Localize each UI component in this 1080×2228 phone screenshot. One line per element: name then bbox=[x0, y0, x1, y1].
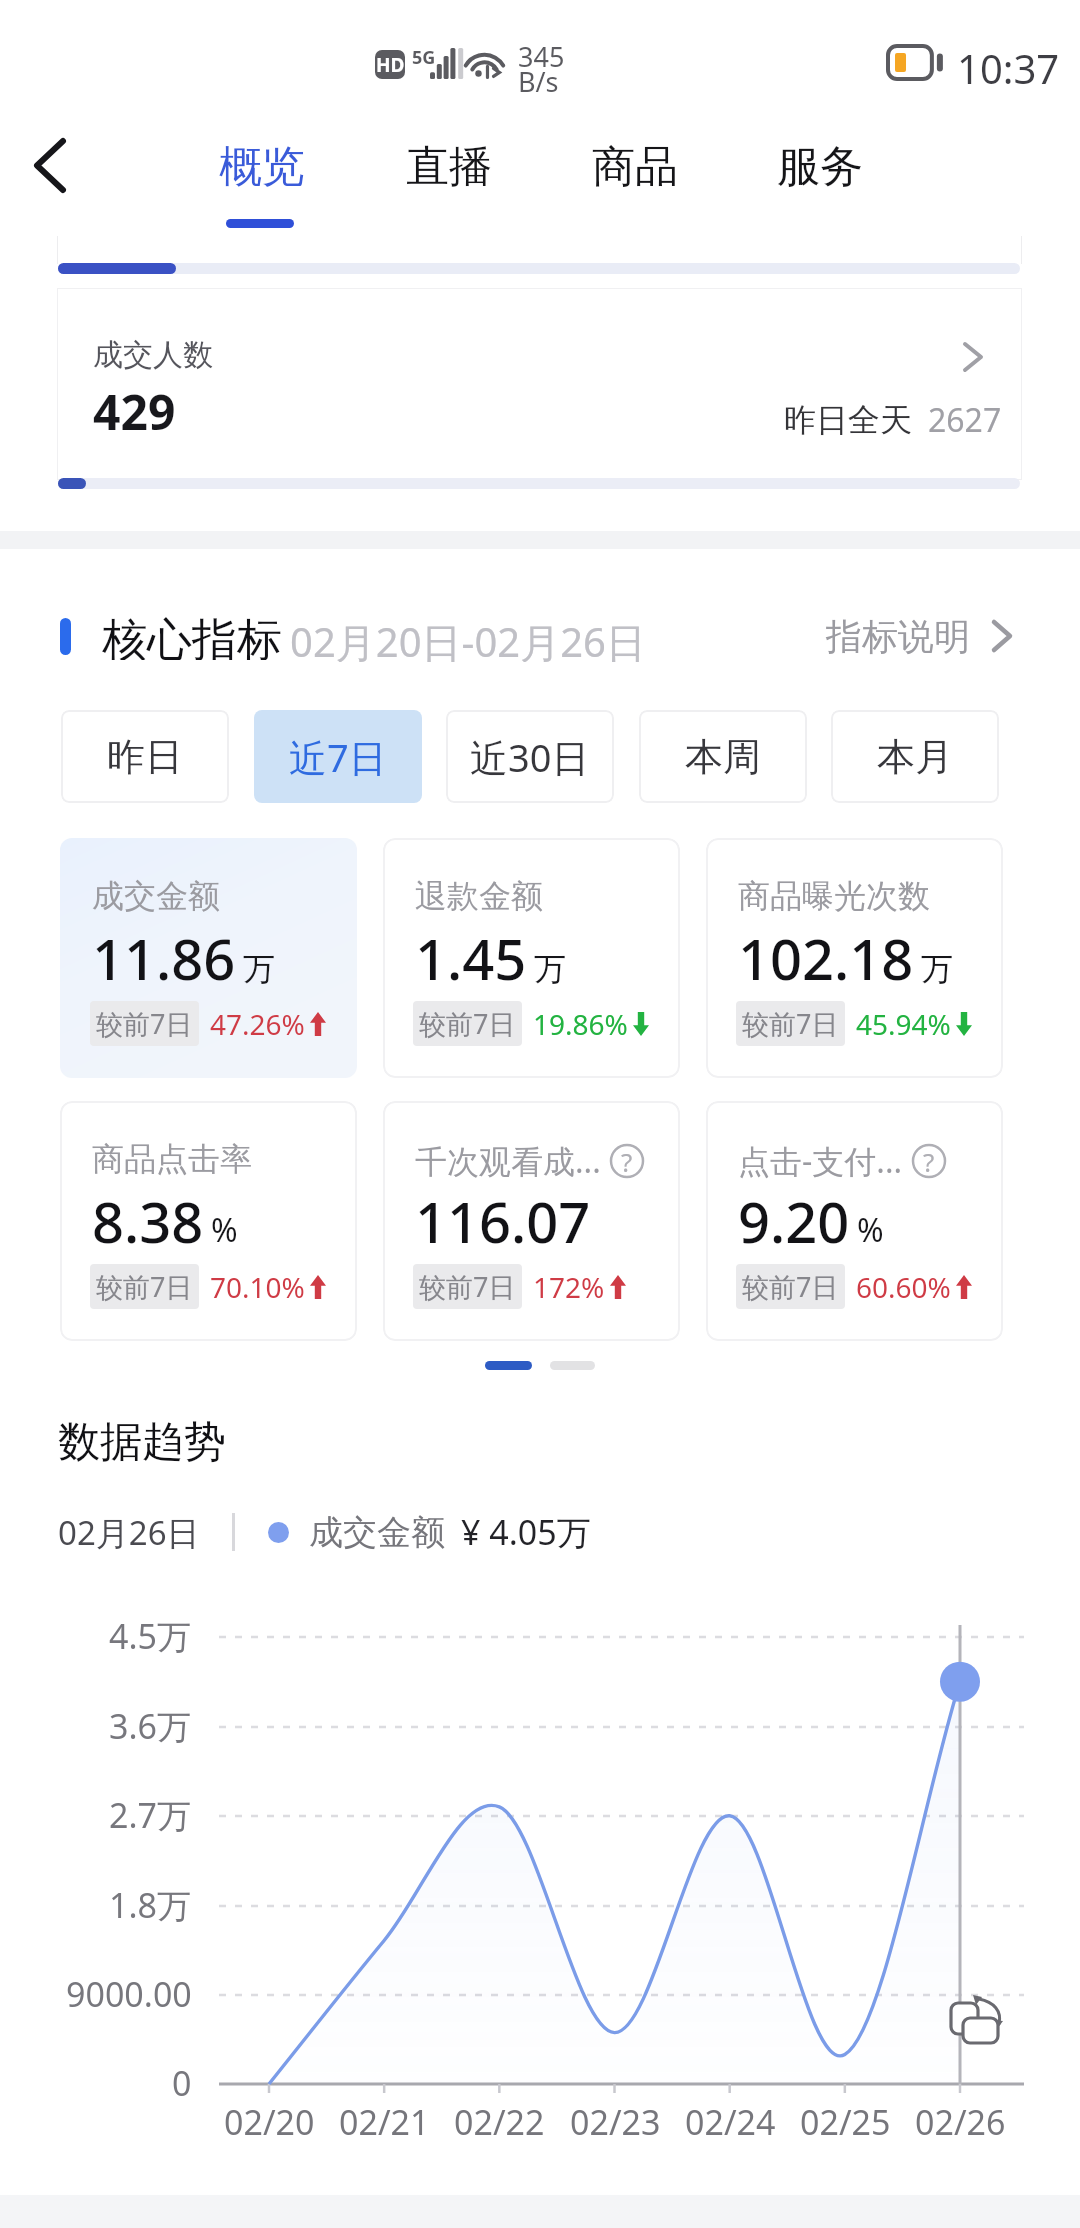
staticText: 19.86% bbox=[533, 1005, 628, 1043]
staticText: 本月 bbox=[877, 733, 953, 781]
button[interactable]: 近7日 bbox=[254, 710, 422, 803]
staticText: 8.38 bbox=[92, 1183, 204, 1259]
staticText: 万 bbox=[243, 949, 275, 989]
button[interactable]: Rotate chart bbox=[946, 1994, 1006, 2054]
button[interactable]: 服务 bbox=[727, 112, 913, 234]
staticText: ¥ 4.05万 bbox=[461, 1509, 591, 1555]
staticText: 退款金额 bbox=[415, 876, 543, 916]
staticText: 45.94% bbox=[856, 1005, 951, 1043]
staticText: 70.10% bbox=[210, 1268, 305, 1306]
staticText: B/s bbox=[518, 63, 559, 100]
staticText: 11.86 bbox=[92, 920, 236, 996]
button[interactable]: 商品 bbox=[542, 112, 728, 234]
staticText: 商品点击率 bbox=[92, 1139, 252, 1179]
staticText: 成交人数 bbox=[93, 336, 213, 374]
staticText: 1.8万 bbox=[109, 1882, 192, 1928]
button[interactable]: 点击-支付... bbox=[706, 1101, 1003, 1341]
staticText: ? bbox=[621, 1144, 633, 1179]
staticText: 4.5万 bbox=[109, 1613, 192, 1659]
button[interactable]: 昨日 bbox=[61, 710, 229, 803]
staticText: 昨日 bbox=[107, 733, 183, 781]
staticText: 点击-支付... bbox=[738, 1139, 903, 1183]
staticText: 较前7日 bbox=[742, 1005, 839, 1042]
staticText: 成交金额 bbox=[92, 876, 220, 916]
staticText: 成交金额 bbox=[309, 1511, 445, 1554]
staticText: 较前7日 bbox=[96, 1005, 193, 1042]
staticText: 商品曝光次数 bbox=[738, 876, 930, 916]
staticText: 10:37 bbox=[957, 41, 1060, 95]
staticText: 3.6万 bbox=[109, 1703, 192, 1749]
staticText: 直播 bbox=[406, 140, 492, 194]
button[interactable]: 本月 bbox=[831, 710, 999, 803]
staticText: 02/24 bbox=[685, 2099, 776, 2145]
staticText: 万 bbox=[921, 949, 953, 989]
staticText: 02月26日 bbox=[58, 1510, 200, 1555]
button[interactable]: 直播 bbox=[356, 112, 542, 234]
staticText: 核心指标 bbox=[102, 612, 282, 660]
staticText: 昨日全天 bbox=[784, 400, 912, 440]
staticText: 2.7万 bbox=[109, 1792, 192, 1838]
staticText: 指标说明 bbox=[826, 614, 970, 659]
button[interactable]: 成交人数 bbox=[57, 288, 1022, 480]
staticText: 9.20 bbox=[738, 1183, 850, 1259]
staticText: 116.07 bbox=[415, 1183, 591, 1259]
staticText: 千次观看成... bbox=[415, 1139, 601, 1183]
staticText: 02/20 bbox=[224, 2099, 315, 2145]
staticText: 2627 bbox=[928, 398, 1002, 442]
staticText: 47.26% bbox=[210, 1005, 305, 1043]
staticText: ? bbox=[923, 1144, 935, 1179]
staticText: 近7日 bbox=[289, 731, 387, 783]
staticText: 9000.00 bbox=[66, 1971, 192, 2017]
staticText: 02/21 bbox=[339, 2099, 430, 2145]
staticText: 02/23 bbox=[570, 2099, 661, 2145]
button[interactable]: 商品曝光次数 bbox=[706, 838, 1003, 1078]
staticText: 1.45 bbox=[415, 920, 527, 996]
staticText: 较前7日 bbox=[419, 1005, 516, 1042]
staticText: 数据趋势 bbox=[58, 1416, 226, 1469]
staticText: 概览 bbox=[219, 140, 305, 194]
staticText: % bbox=[857, 1208, 884, 1252]
staticText: HD bbox=[376, 52, 405, 78]
staticText: 商品 bbox=[592, 140, 678, 194]
staticText: 02/25 bbox=[800, 2099, 891, 2145]
staticText: 5G bbox=[412, 45, 436, 70]
staticText: 02/26 bbox=[915, 2099, 1006, 2145]
staticText: 60.60% bbox=[856, 1268, 951, 1306]
staticText: 服务 bbox=[777, 140, 863, 194]
button[interactable]: 退款金额 bbox=[383, 838, 680, 1078]
button[interactable]: Back bbox=[8, 124, 92, 206]
staticText: 较前7日 bbox=[419, 1268, 516, 1305]
staticText: % bbox=[211, 1208, 238, 1252]
button[interactable]: 千次观看成... bbox=[383, 1101, 680, 1341]
staticText: 02/22 bbox=[454, 2099, 545, 2145]
button[interactable]: 近30日 bbox=[446, 710, 614, 803]
staticText: 102.18 bbox=[738, 920, 914, 996]
button[interactable]: 商品点击率 bbox=[60, 1101, 357, 1341]
staticText: 0 bbox=[172, 2060, 192, 2106]
staticText: 较前7日 bbox=[742, 1268, 839, 1305]
button[interactable]: 指标说明 bbox=[826, 612, 1012, 660]
button[interactable]: 概览 bbox=[169, 112, 355, 234]
staticText: 本周 bbox=[685, 733, 761, 781]
staticText: 345 bbox=[518, 38, 565, 75]
staticText: 429 bbox=[93, 379, 176, 444]
button[interactable]: 成交金额 bbox=[60, 838, 357, 1078]
staticText: 02月20日-02月26日 bbox=[290, 614, 646, 662]
staticText: 万 bbox=[534, 949, 566, 989]
staticText: 近30日 bbox=[470, 731, 590, 783]
staticText: 172% bbox=[533, 1268, 605, 1306]
staticText: 较前7日 bbox=[96, 1268, 193, 1305]
button[interactable]: 本周 bbox=[639, 710, 807, 803]
